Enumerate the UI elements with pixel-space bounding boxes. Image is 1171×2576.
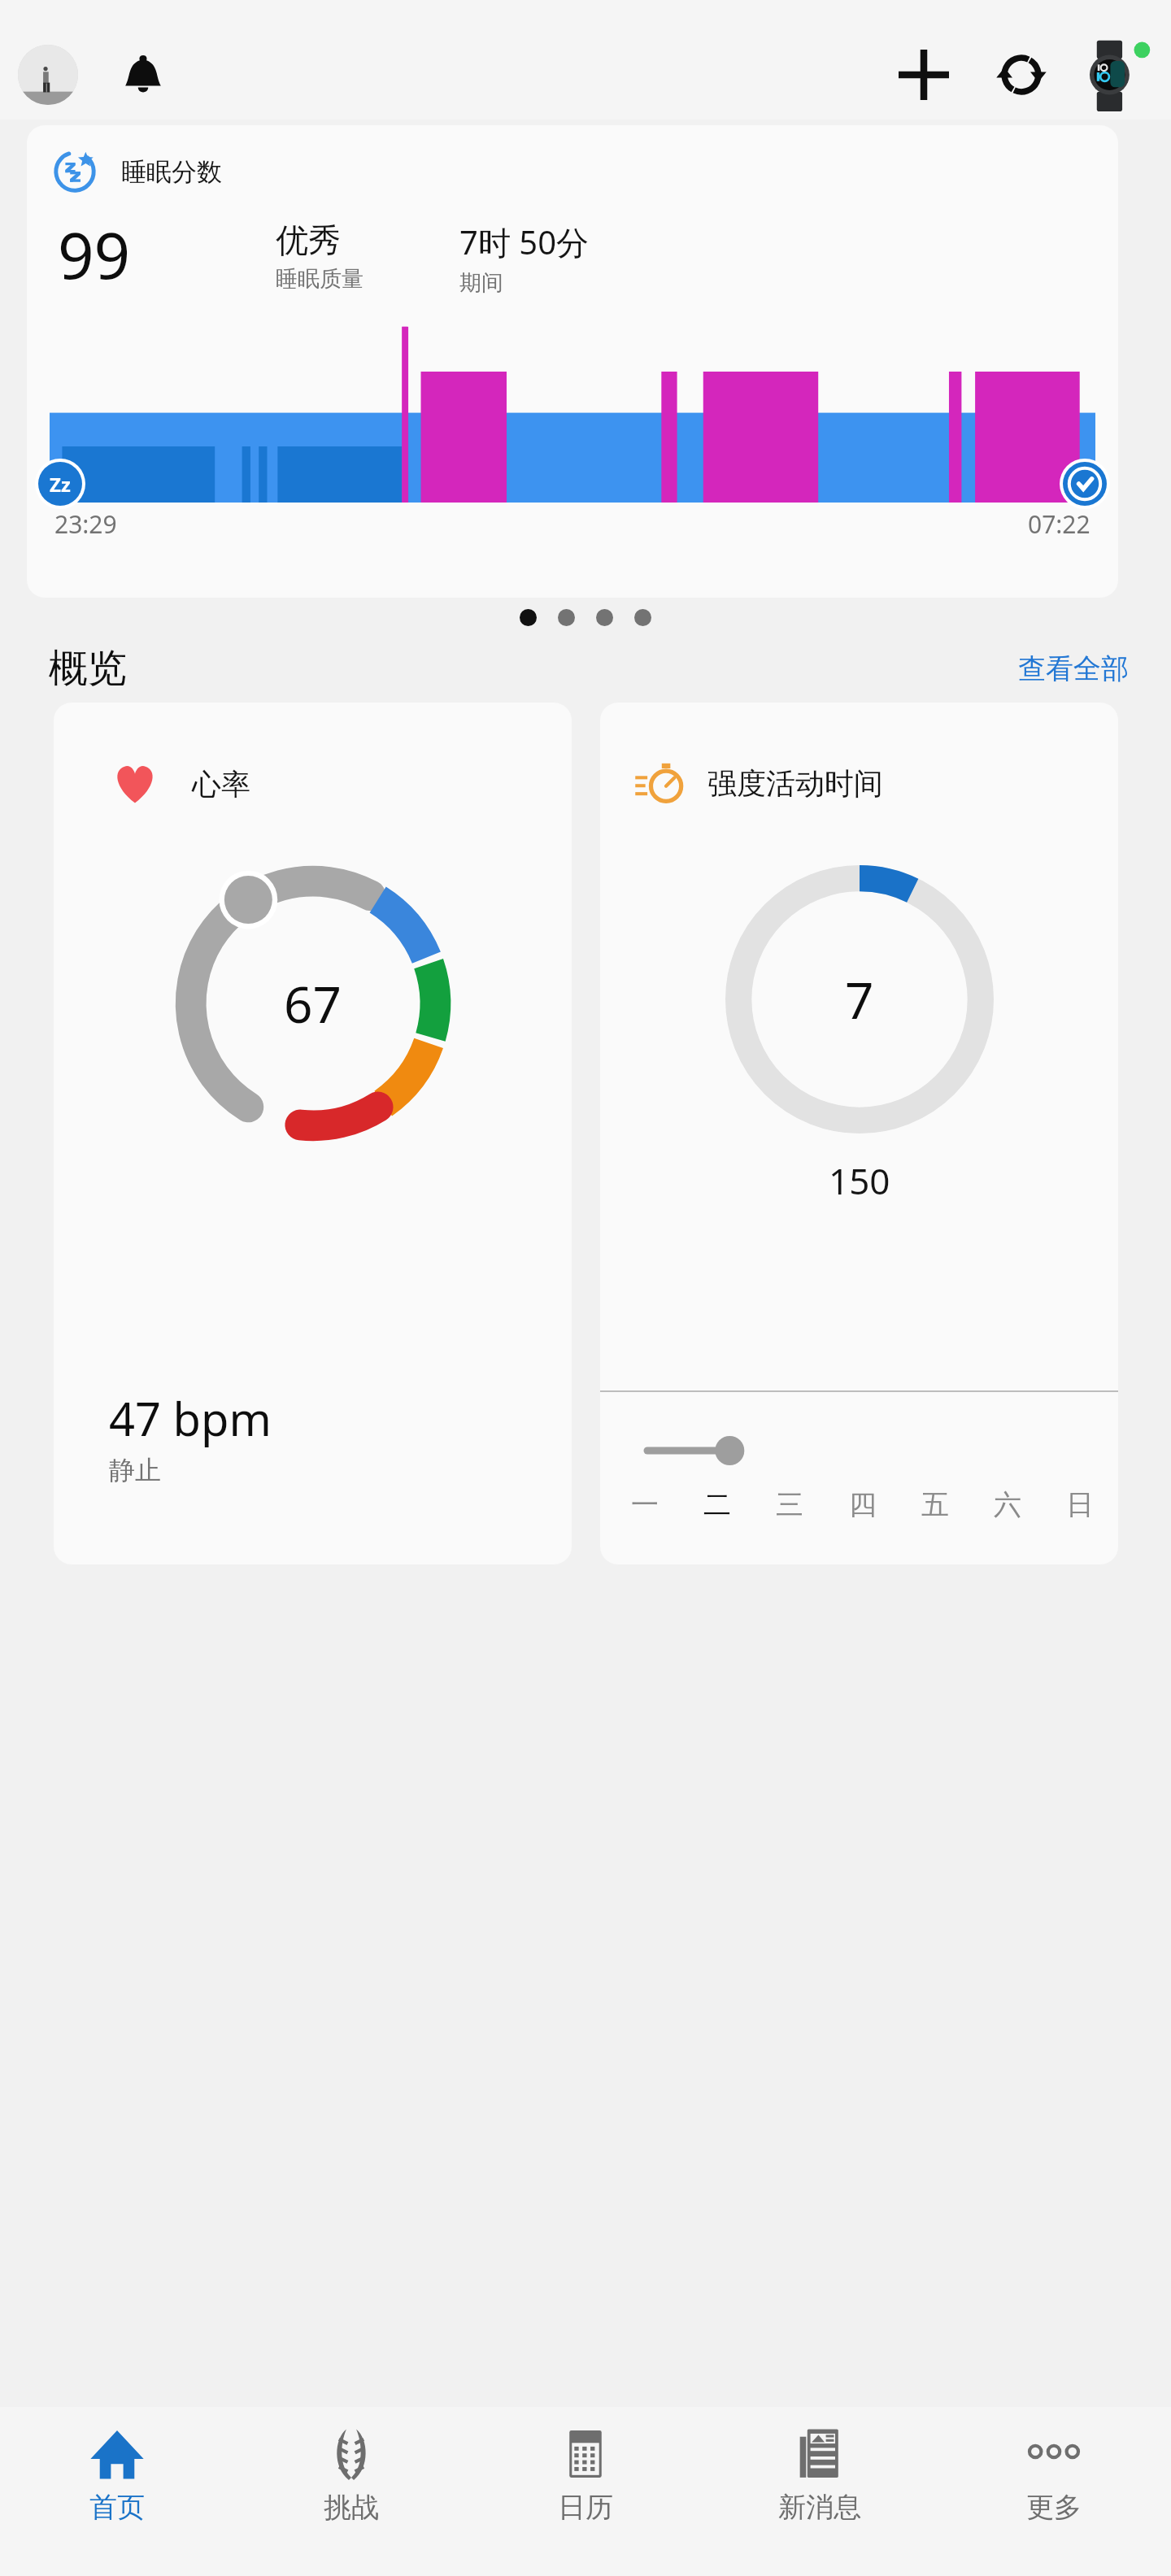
staticText: 概览: [49, 644, 127, 693]
button[interactable]: [558, 609, 575, 626]
staticText: Zz: [50, 471, 71, 498]
button[interactable]: [634, 609, 651, 626]
staticText: 07:22: [1028, 507, 1090, 541]
staticText: 三: [776, 1487, 803, 1522]
staticText: 挑战: [324, 2490, 379, 2525]
staticText: 99: [58, 211, 131, 298]
staticText: 二: [703, 1487, 731, 1522]
button[interactable]: Add: [886, 37, 961, 112]
staticText: 心率: [192, 766, 250, 803]
staticText: 静止: [109, 1454, 161, 1486]
button[interactable]: 查看全部: [1018, 651, 1129, 686]
button[interactable]: [596, 609, 613, 626]
staticText: 五: [921, 1487, 949, 1522]
staticText: 23:29: [54, 507, 117, 541]
button[interactable]: Notifications: [114, 46, 172, 104]
staticText: 7: [845, 965, 874, 1033]
staticText: 新消息: [778, 2490, 861, 2525]
staticText: 睡眠质量: [276, 265, 363, 293]
button[interactable]: Sync: [984, 37, 1059, 112]
staticText: 一: [631, 1487, 659, 1522]
button[interactable]: 心率: [54, 703, 572, 1564]
button[interactable]: 强度活动时间: [600, 703, 1118, 1564]
button[interactable]: 挑战: [234, 2407, 468, 2576]
staticText: 强度活动时间: [707, 765, 883, 802]
button[interactable]: 新消息: [703, 2407, 937, 2576]
staticText: 67: [284, 969, 342, 1038]
staticText: 首页: [89, 2490, 145, 2525]
button[interactable]: [520, 609, 537, 626]
staticText: 六: [994, 1487, 1021, 1522]
button[interactable]: 更多: [937, 2407, 1171, 2576]
staticText: 更多: [1026, 2490, 1082, 2525]
button[interactable]: 首页: [0, 2407, 234, 2576]
staticText: 睡眠分数: [121, 156, 222, 188]
staticText: 日历: [558, 2490, 613, 2525]
button[interactable]: Profile: [18, 45, 78, 105]
staticText: 期间: [459, 269, 503, 297]
staticText: 日: [1066, 1487, 1094, 1522]
staticText: 150: [829, 1156, 890, 1205]
button[interactable]: 睡眠分数: [27, 125, 1118, 598]
staticText: 47 bpm: [109, 1387, 272, 1449]
staticText: 优秀: [276, 220, 341, 260]
staticText: 查看全部: [1018, 651, 1129, 686]
button[interactable]: 日历: [468, 2407, 703, 2576]
staticText: 7时 50分: [459, 220, 590, 264]
staticText: 四: [849, 1487, 877, 1522]
button[interactable]: Device: [1077, 37, 1153, 113]
